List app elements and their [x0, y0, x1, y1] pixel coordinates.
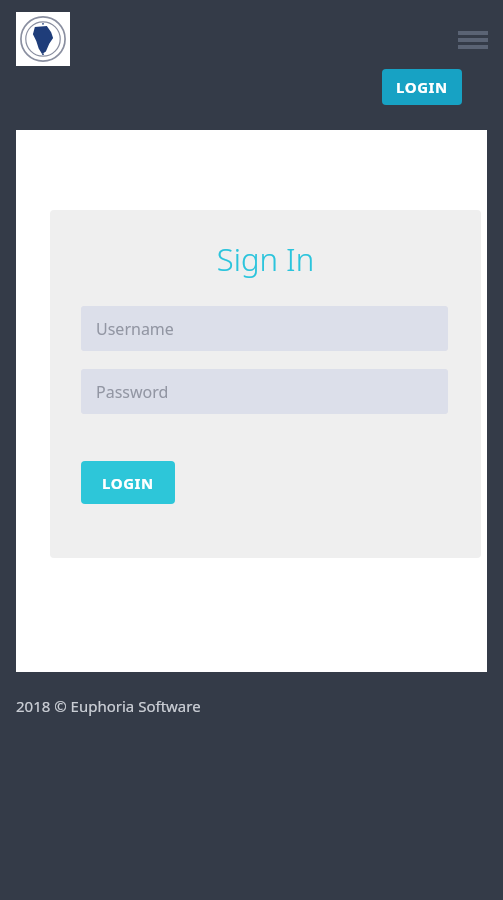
button[interactable]: Password: [81, 369, 448, 414]
button[interactable]: LOGIN: [81, 461, 175, 504]
staticText: Sign In: [50, 238, 481, 280]
staticText: LOGIN: [102, 473, 154, 493]
staticText: Password: [96, 381, 169, 403]
staticText: 2018 © Euphoria Software: [16, 696, 201, 716]
staticText: LOGIN: [396, 77, 448, 97]
button[interactable]: Username: [81, 306, 448, 351]
staticText: Username: [96, 318, 174, 340]
button[interactable]: LOGIN: [382, 69, 462, 105]
button[interactable]: Menu: [450, 22, 496, 54]
button[interactable]: Home logo: [16, 12, 70, 66]
